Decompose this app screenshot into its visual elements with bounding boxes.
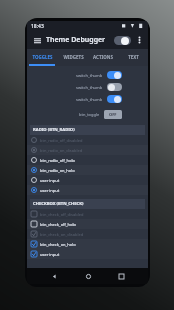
button[interactable]: btn_check_on_holo [27,239,148,249]
staticText: btn_toggle [79,112,100,117]
button[interactable]: ACTIONS [88,49,118,64]
staticText: switch_thumb [76,85,103,90]
staticText: WIDGETS [63,54,84,60]
staticText: switch_thumb [76,97,103,102]
staticText: CHECKBOX (BTN_CHECK) [33,201,84,207]
button[interactable]: WIDGETS [58,49,88,64]
staticText: switch_thumb [76,73,103,78]
staticText: btn_radio_on_disabled [40,148,83,153]
staticText: Theme Debugger [46,35,106,45]
staticText: user input [40,252,60,257]
staticText: btn_check_off_disabled [40,212,84,217]
button[interactable]: btn_toggle [27,107,148,121]
button[interactable]: user input [27,249,148,259]
button[interactable]: btn_radio_on_holo [27,165,148,175]
button[interactable]: TOGGLES [27,49,58,64]
button[interactable]: Back [47,269,61,283]
button[interactable]: Recent apps [114,269,128,283]
staticText: btn_radio_off_holo [40,158,75,163]
button[interactable]: btn_radio_off_disabled [27,135,148,145]
button[interactable]: switch_thumb [27,69,148,81]
staticText: btn_radio_on_holo [40,168,75,173]
staticText: TEXT [128,54,139,60]
button[interactable]: switch_thumb [27,81,148,93]
staticText: user input [40,188,60,193]
button[interactable]: Toggle dark theme [114,36,131,45]
staticText: btn_radio_off_disabled [40,138,83,143]
staticText: btn_check_on_holo [40,242,76,247]
staticText: 18:43 [31,23,44,30]
staticText: btn_check_off_holo [40,222,76,227]
staticText: RADIO (BTN_RADIO) [33,127,75,133]
staticText: ACTIONS [93,54,113,60]
button[interactable]: Open navigation menu [31,34,43,46]
staticText: OFF [109,112,117,117]
button[interactable]: switch_thumb [27,93,148,105]
staticText: btn_check_on_disabled [40,232,84,237]
button[interactable]: TEXT [118,49,148,64]
staticText: user input [40,178,60,183]
button[interactable]: user input [27,175,148,185]
button[interactable]: btn_check_off_holo [27,219,148,229]
button[interactable]: More options [134,35,144,45]
button[interactable]: user input [27,185,148,195]
button[interactable]: btn_check_off_disabled [27,209,148,219]
button[interactable]: btn_radio_on_disabled [27,145,148,155]
button[interactable]: btn_radio_off_holo [27,155,148,165]
button[interactable]: Home [81,269,95,283]
button[interactable]: btn_check_on_disabled [27,229,148,239]
staticText: TOGGLES [32,54,53,60]
